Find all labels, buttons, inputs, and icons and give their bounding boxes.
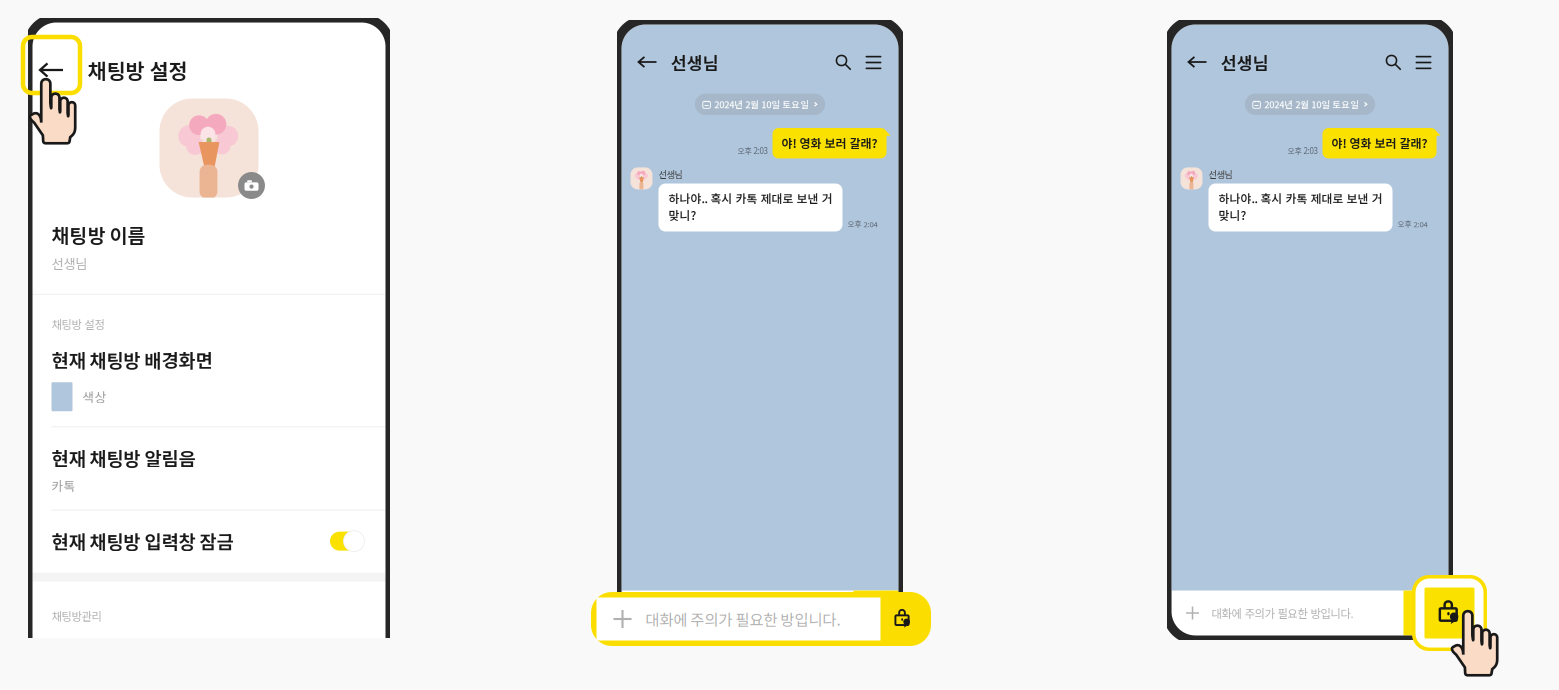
button[interactable]: Back — [629, 43, 665, 81]
staticText: 대화에 주의가 필요한 방입니다. — [645, 608, 840, 630]
staticText: 오후 2:03 — [737, 145, 767, 156]
button[interactable]: Back — [1179, 43, 1215, 81]
button[interactable]: 2024년 2월 10일 토요일 — [1245, 93, 1375, 115]
staticText: 채팅방 설정 — [87, 55, 187, 85]
staticText: 야! 영화 보러 갈래? — [1331, 134, 1427, 151]
button[interactable]: Add attachment — [632, 603, 652, 623]
button[interactable]: Add attachment — [1182, 603, 1202, 623]
button[interactable]: Back — [32, 45, 70, 95]
button[interactable]: Message input field — [591, 592, 931, 646]
staticText: 현재 채팅방 알림음 — [51, 444, 195, 471]
staticText: 현재 채팅방 입력창 잠금 — [51, 528, 233, 555]
button[interactable]: Send secret message — [1412, 575, 1487, 651]
button[interactable]: 현재 채팅방 알림음 — [32, 427, 385, 510]
staticText: 하나야.. 혹시 카톡 제대로 보낸 거 맞니? — [668, 189, 832, 223]
button[interactable]: Search — [1378, 47, 1408, 77]
button[interactable]: 현재 채팅방 입력창 잠금 — [32, 511, 385, 573]
staticText: 대화에 주의가 필요한 방입니다. — [1211, 605, 1353, 621]
button[interactable]: Send secret message — [853, 590, 898, 635]
button[interactable]: Menu — [858, 47, 888, 77]
staticText: 현재 채팅방 배경화면 — [51, 346, 212, 373]
button[interactable]: 현재 채팅방 배경화면 — [32, 332, 385, 426]
staticText: 오후 2:03 — [1287, 145, 1317, 156]
staticText: 채팅방 설정 — [51, 316, 104, 332]
staticText: 2024년 2월 10일 토요일 — [714, 97, 809, 111]
staticText: 선생님 — [670, 50, 718, 75]
staticText: 채팅방관리 — [51, 608, 101, 624]
staticText: 카톡 — [51, 476, 75, 495]
button[interactable]: 채팅방 이름 — [32, 198, 385, 294]
staticText: 선생님 — [51, 253, 87, 273]
button[interactable]: Send secret message — [1403, 590, 1448, 635]
staticText: 채팅방 이름 — [51, 220, 145, 248]
staticText: 2024년 2월 10일 토요일 — [1264, 97, 1359, 111]
staticText: 야! 영화 보러 갈래? — [781, 134, 877, 151]
staticText: 오후 2:04 — [1397, 218, 1427, 229]
staticText: 하나야.. 혹시 카톡 제대로 보낸 거 맞니? — [1218, 189, 1382, 223]
staticText: 색상 — [82, 388, 106, 406]
button[interactable]: Change photo — [236, 170, 266, 200]
staticText: 오후 2:04 — [847, 218, 877, 229]
staticText: 선생님 — [658, 167, 682, 180]
button[interactable]: 2024년 2월 10일 토요일 — [695, 93, 825, 115]
staticText: 대화에 주의가 필요한 방입니다. — [661, 605, 803, 621]
staticText: 선생님 — [1220, 50, 1268, 75]
staticText: 선생님 — [1208, 167, 1232, 180]
button[interactable]: Menu — [1408, 47, 1438, 77]
button[interactable]: Search — [828, 47, 858, 77]
